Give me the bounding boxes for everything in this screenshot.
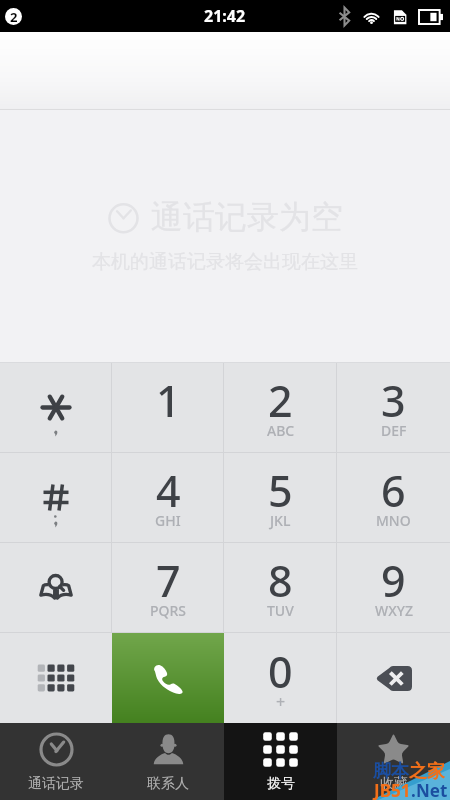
staticText: MNO xyxy=(376,511,411,530)
button[interactable]: 9 xyxy=(337,543,450,632)
staticText: 本机的通话记录将会出现在这里 xyxy=(92,250,358,274)
staticText: 3 xyxy=(381,371,406,430)
button[interactable]: 2 xyxy=(224,363,337,452)
staticText: 脚本 xyxy=(373,760,409,783)
staticText: 9 xyxy=(381,551,406,610)
button[interactable]: Delete xyxy=(337,633,450,723)
button[interactable]: Keypad xyxy=(0,633,112,723)
button[interactable]: 8 xyxy=(224,543,337,632)
staticText: 1 xyxy=(156,371,181,430)
staticText: 之家 xyxy=(409,760,445,783)
staticText: JB51 xyxy=(374,779,411,800)
button[interactable]: 3 xyxy=(337,363,450,452)
button[interactable]: Star xyxy=(0,363,112,452)
staticText: . xyxy=(411,779,416,800)
staticText: 4 xyxy=(156,461,181,520)
staticText: 通话记录为空 xyxy=(151,197,343,237)
button[interactable]: 通话记录 xyxy=(0,723,112,800)
button[interactable]: 1 xyxy=(112,363,224,452)
staticText: 7 xyxy=(156,551,181,610)
button[interactable]: 0 xyxy=(224,633,337,723)
staticText: DEF xyxy=(381,421,407,440)
staticText: ABC xyxy=(267,421,295,440)
staticText: 8 xyxy=(268,551,293,610)
button[interactable]: 5 xyxy=(224,453,337,542)
button[interactable]: 6 xyxy=(337,453,450,542)
staticText: Net xyxy=(416,779,448,800)
staticText: GHI xyxy=(155,511,181,530)
staticText: WXYZ xyxy=(375,601,413,620)
staticText: 0 xyxy=(268,642,293,701)
staticText: TUV xyxy=(267,601,294,620)
staticText: 21:42 xyxy=(204,5,246,27)
button[interactable]: 拨号 xyxy=(224,723,337,800)
button[interactable]: 7 xyxy=(112,543,224,632)
button[interactable]: Call xyxy=(112,633,224,723)
staticText: 通话记录 xyxy=(28,775,84,793)
staticText: 收藏 xyxy=(380,775,408,793)
button[interactable]: Pound xyxy=(0,453,112,542)
button[interactable]: 联系人 xyxy=(112,723,224,800)
staticText: 6 xyxy=(381,461,406,520)
button[interactable]: Search contacts xyxy=(0,543,112,632)
staticText: PQRS xyxy=(150,601,187,620)
button[interactable]: 4 xyxy=(112,453,224,542)
staticText: 5 xyxy=(268,461,293,520)
button[interactable]: 收藏 xyxy=(337,723,450,800)
staticText: + xyxy=(276,691,286,713)
staticText: 联系人 xyxy=(147,775,189,793)
staticText: 2 xyxy=(268,371,293,430)
staticText: 拨号 xyxy=(267,775,295,793)
staticText: 2 xyxy=(10,8,18,25)
staticText: JKL xyxy=(270,511,291,530)
